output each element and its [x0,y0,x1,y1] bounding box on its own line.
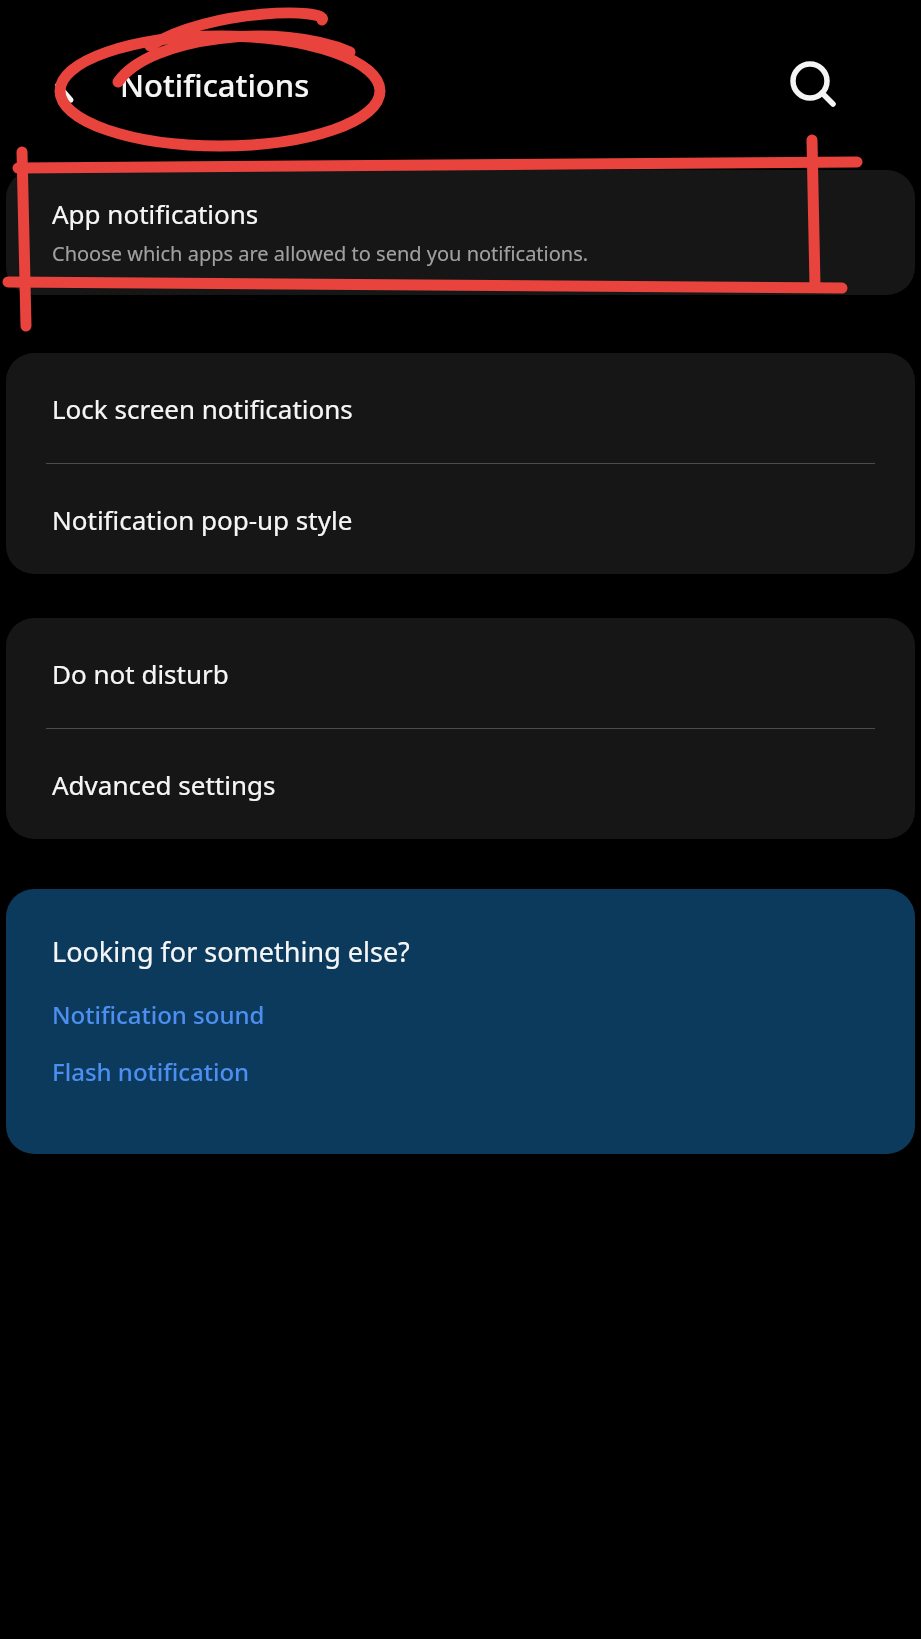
staticText: Notification pop-up style [52,502,353,537]
button[interactable]: Lock screen notifications [6,353,915,463]
staticText: Advanced settings [52,767,276,802]
staticText: Do not disturb [52,656,229,691]
button[interactable]: App notifications [6,170,915,295]
button[interactable]: Flash notification [52,1055,250,1088]
button[interactable]: Search [781,53,845,117]
staticText: Flash notification [52,1055,250,1088]
button[interactable]: Do not disturb [6,618,915,728]
button[interactable]: Notification sound [52,998,265,1031]
staticText: Lock screen notifications [52,391,353,426]
staticText: Choose which apps are allowed to send yo… [52,240,589,267]
staticText: Looking for something else? [52,933,410,970]
staticText: Notifications [120,64,310,106]
button[interactable]: Notification pop-up style [6,464,915,574]
button[interactable]: Advanced settings [6,729,915,839]
staticText: App notifications [52,196,259,231]
button[interactable]: Back [34,55,94,115]
staticText: Notification sound [52,998,265,1031]
